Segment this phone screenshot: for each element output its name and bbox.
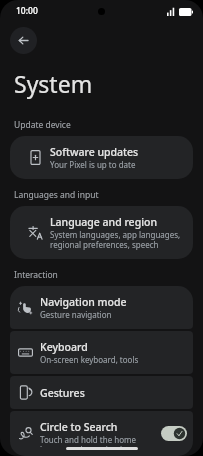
button[interactable]: Language and region — [10, 206, 193, 259]
staticText: 10:00 — [16, 5, 38, 17]
staticText: On-screen keyboard, tools — [40, 354, 139, 365]
button[interactable]: Circle to Search — [10, 411, 193, 456]
staticText: Languages and input — [14, 189, 99, 201]
staticText: Update device — [14, 119, 71, 131]
button[interactable]: Back — [10, 27, 37, 54]
staticText: Gestures — [40, 386, 85, 400]
staticText: Interaction — [14, 269, 58, 281]
staticText: Circle to Search — [40, 420, 118, 434]
staticText: Touch and hold the home button or the na… — [40, 434, 155, 447]
staticText: Your Pixel is up to date — [50, 159, 136, 170]
staticText: System languages, app languages, regiona… — [50, 229, 181, 250]
staticText: System — [14, 68, 93, 99]
staticText: Gesture navigation — [40, 309, 112, 320]
staticText: Navigation mode — [40, 295, 127, 309]
button[interactable]: Keyboard — [10, 331, 193, 374]
button[interactable]: Software updates — [10, 136, 193, 179]
staticText: Software updates — [50, 145, 139, 159]
staticText: Keyboard — [40, 340, 88, 354]
button[interactable]: Navigation mode — [10, 286, 193, 329]
button[interactable]: Gestures — [10, 376, 193, 409]
button[interactable]: Circle to Search toggle — [161, 426, 187, 441]
staticText: Language and region — [50, 215, 157, 229]
